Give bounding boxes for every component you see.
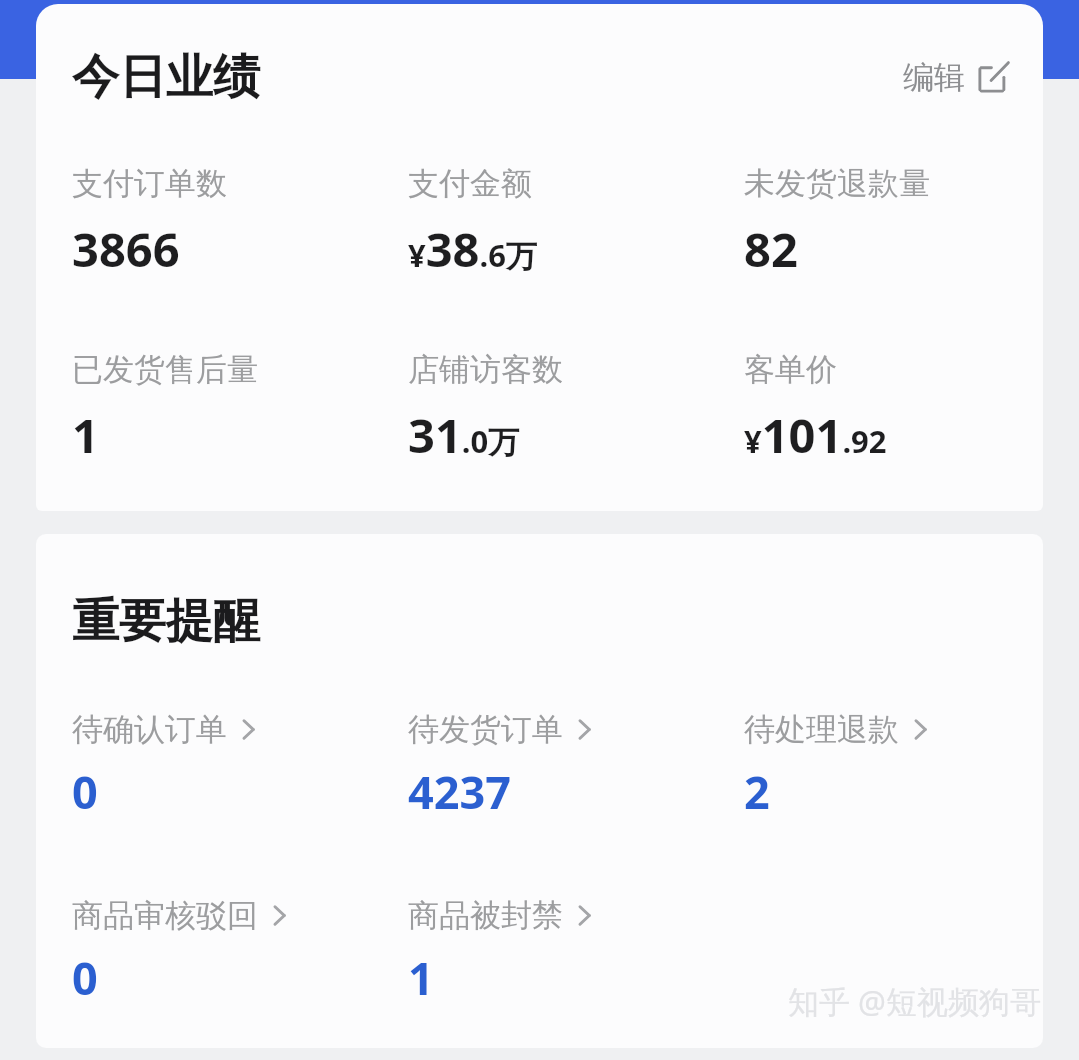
staticText: 今日业绩 <box>72 48 260 107</box>
button[interactable]: 客单价 <box>744 350 1043 467</box>
staticText: 知乎 @短视频狗哥 <box>788 980 1041 1022</box>
staticText: 待处理退款 <box>744 710 899 749</box>
button[interactable]: 商品被封禁 <box>408 896 744 1008</box>
staticText: 31.0万 <box>408 403 520 467</box>
staticText: 0 <box>72 947 98 1008</box>
button[interactable]: 待发货订单 <box>408 710 744 822</box>
staticText: ¥38.6万 <box>408 217 537 281</box>
button[interactable]: 未发货退款量 <box>744 164 1043 281</box>
button[interactable]: 商品审核驳回 <box>72 896 408 1008</box>
button[interactable]: 编辑 <box>899 54 1013 101</box>
staticText: 3866 <box>72 217 180 281</box>
staticText: 重要提醒 <box>72 592 260 651</box>
staticText: 待发货订单 <box>408 710 563 749</box>
staticText: 1 <box>72 403 99 467</box>
button[interactable]: 店铺访客数 <box>408 350 744 467</box>
button[interactable]: 已发货售后量 <box>72 350 408 467</box>
staticText: 82 <box>744 217 798 281</box>
button[interactable]: 支付金额 <box>408 164 744 281</box>
staticText: 编辑 <box>903 58 965 97</box>
staticText: 1 <box>408 947 434 1008</box>
staticText: 商品审核驳回 <box>72 896 258 935</box>
staticText: 店铺访客数 <box>408 350 563 389</box>
button[interactable]: 支付订单数 <box>72 164 408 281</box>
staticText: 待确认订单 <box>72 710 227 749</box>
staticText: 客单价 <box>744 350 837 389</box>
staticText: 已发货售后量 <box>72 350 258 389</box>
staticText: ¥101.92 <box>744 403 887 467</box>
staticText: 2 <box>744 761 770 822</box>
button[interactable]: 待处理退款 <box>744 710 1043 822</box>
staticText: 支付金额 <box>408 164 532 203</box>
staticText: 支付订单数 <box>72 164 227 203</box>
staticText: 0 <box>72 761 98 822</box>
staticText: 4237 <box>408 761 511 822</box>
staticText: 商品被封禁 <box>408 896 563 935</box>
staticText: 未发货退款量 <box>744 164 930 203</box>
button[interactable]: 待确认订单 <box>72 710 408 822</box>
